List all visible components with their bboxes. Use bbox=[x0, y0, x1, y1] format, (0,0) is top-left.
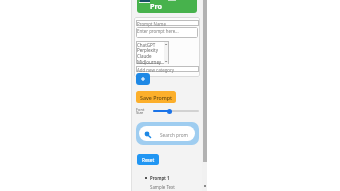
staticText: Font bbox=[136, 107, 145, 112]
staticText: Perplexity bbox=[137, 47, 158, 53]
staticText: Sample Text bbox=[150, 184, 175, 190]
button[interactable] bbox=[136, 20, 199, 26]
staticText: Prompt Name bbox=[137, 21, 166, 27]
button[interactable] bbox=[136, 66, 199, 72]
staticText: Save Prompt bbox=[140, 94, 173, 101]
staticText: Size bbox=[136, 110, 144, 115]
button[interactable]: Upgrade to Pro bbox=[137, 0, 197, 13]
staticText: ChatGPT bbox=[137, 42, 156, 48]
button[interactable]: Add category bbox=[136, 73, 150, 85]
button[interactable] bbox=[136, 41, 169, 64]
staticText: MidJourney bbox=[137, 59, 162, 65]
button[interactable]: Reset bbox=[137, 154, 159, 165]
button[interactable]: Save Prompt bbox=[136, 91, 176, 103]
staticText: Search prom bbox=[160, 132, 188, 138]
staticText: Prompt 1 bbox=[150, 175, 170, 181]
staticText: Pro bbox=[150, 1, 163, 11]
button[interactable]: Search prom bbox=[136, 122, 199, 145]
staticText: Enter prompt here... bbox=[137, 28, 179, 34]
staticText: Claude bbox=[137, 53, 152, 59]
button[interactable]: Font size slider bbox=[167, 109, 172, 114]
staticText: Reset bbox=[142, 157, 155, 163]
staticText: Add new category bbox=[137, 67, 175, 73]
button[interactable] bbox=[136, 27, 198, 38]
